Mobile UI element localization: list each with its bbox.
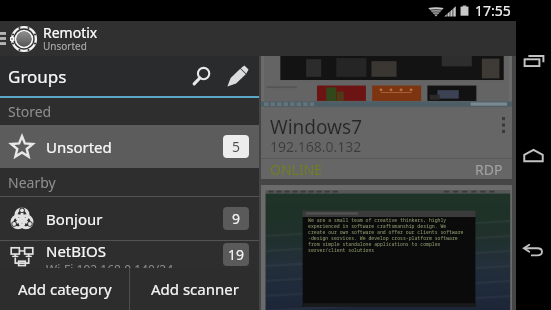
- button[interactable]: Home: [516, 120, 551, 190]
- staticText: Windows7: [270, 114, 363, 140]
- staticText: Nearby: [8, 173, 56, 192]
- staticText: RDP: [475, 160, 503, 179]
- staticText: server/client solutions: [308, 247, 375, 253]
- staticText: Stored: [8, 102, 52, 121]
- button[interactable]: Back: [516, 215, 551, 285]
- button[interactable]: Recent apps: [516, 25, 551, 95]
- staticText: Bonjour: [46, 209, 103, 229]
- button[interactable]: Navigation menu: [0, 21, 8, 56]
- staticText: Add scanner: [151, 279, 239, 299]
- staticText: Remotix: [43, 23, 98, 38]
- staticText: Groups: [8, 65, 67, 88]
- button[interactable]: Add category: [0, 268, 129, 310]
- button[interactable]: Search: [177, 56, 216, 96]
- staticText: experienced in software craftsmanship de…: [308, 223, 447, 229]
- staticText: Unsorted: [46, 137, 112, 157]
- button[interactable]: NetBIOS: [0, 241, 259, 268]
- staticText: 5: [232, 137, 241, 156]
- staticText: 17:55: [475, 1, 511, 20]
- staticText: NetBIOS: [46, 241, 107, 261]
- staticText: from simple standalone applications to c…: [308, 241, 441, 247]
- staticText: 9: [232, 209, 241, 228]
- staticText: 192.168.0.132: [270, 137, 362, 156]
- button[interactable]: Add scanner: [130, 268, 259, 310]
- staticText: We are a small team of creative thinkers…: [308, 217, 447, 223]
- staticText: Add category: [18, 279, 112, 299]
- button[interactable]: Edit: [216, 56, 259, 96]
- button[interactable]: We are a small team of creative thinkers…: [261, 185, 512, 310]
- button[interactable]: Bonjour: [0, 197, 259, 240]
- staticText: Wi-Fi 192.168.0.140/24: [46, 261, 174, 268]
- staticText: Unsorted: [43, 39, 87, 53]
- button[interactable]: Unsorted: [0, 125, 259, 168]
- staticText: 19: [228, 245, 245, 264]
- staticText: ONLINE: [270, 160, 323, 179]
- button[interactable]: Windows7: [261, 56, 512, 179]
- staticText: -design services. We develop cross-platf…: [308, 235, 458, 241]
- staticText: create our own software and offer our cl…: [308, 229, 464, 235]
